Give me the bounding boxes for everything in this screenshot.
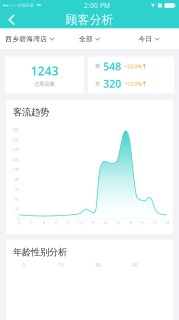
staticText: 20 bbox=[14, 206, 18, 211]
button[interactable]: 西乡碧海湾店 bbox=[0, 28, 60, 49]
staticText: 8 bbox=[67, 220, 69, 225]
staticText: 10 bbox=[79, 220, 83, 225]
staticText: 西乡碧海湾店 bbox=[5, 35, 47, 43]
staticText: 16 bbox=[116, 220, 120, 225]
staticText: 年龄性别分析 bbox=[13, 246, 67, 258]
staticText: 4 bbox=[43, 220, 45, 225]
staticText: 6 bbox=[55, 220, 57, 225]
staticText: 2:00 PM bbox=[84, 1, 110, 10]
button[interactable]: Back bbox=[0, 11, 24, 29]
staticText: 客流趋势 bbox=[13, 106, 49, 118]
staticText: 14 bbox=[103, 220, 107, 225]
staticText: 12 bbox=[91, 220, 95, 225]
button[interactable]: 今日 bbox=[119, 28, 179, 49]
staticText: 140 bbox=[12, 147, 18, 152]
staticText: 22 bbox=[153, 220, 157, 225]
staticText: 24 bbox=[165, 220, 169, 225]
staticText: 中国联通 bbox=[18, 3, 34, 8]
button[interactable]: 全部 bbox=[60, 28, 119, 49]
staticText: +12.9% bbox=[124, 80, 141, 87]
staticText: 女 bbox=[95, 80, 100, 87]
staticText: 0 bbox=[18, 220, 20, 225]
staticText: 0 bbox=[16, 216, 18, 221]
staticText: 18 bbox=[128, 220, 132, 225]
staticText: 60 bbox=[14, 186, 18, 192]
staticText: 20 bbox=[140, 220, 144, 225]
staticText: 总客流量 bbox=[34, 81, 54, 87]
staticText: 顾客分析 bbox=[65, 12, 113, 27]
staticText: 1243 bbox=[30, 63, 58, 79]
staticText: 男 bbox=[95, 63, 100, 70]
staticText: 40 bbox=[132, 261, 138, 269]
staticText: 100 bbox=[12, 167, 18, 172]
staticText: 30 bbox=[95, 261, 101, 269]
staticText: 今日 bbox=[139, 35, 153, 43]
staticText: 120 bbox=[12, 157, 18, 162]
staticText: 2 bbox=[30, 220, 32, 225]
staticText: 全部 bbox=[79, 35, 93, 43]
staticText: 180 bbox=[12, 127, 18, 132]
staticText: 5 bbox=[22, 261, 25, 269]
staticText: 40 bbox=[14, 196, 18, 202]
staticText: 15 bbox=[58, 261, 64, 269]
staticText: 320 bbox=[103, 76, 121, 91]
staticText: +20.0% bbox=[124, 63, 141, 70]
staticText: 548 bbox=[103, 59, 121, 73]
staticText: 160 bbox=[12, 137, 18, 142]
staticText: 80 bbox=[14, 176, 18, 182]
